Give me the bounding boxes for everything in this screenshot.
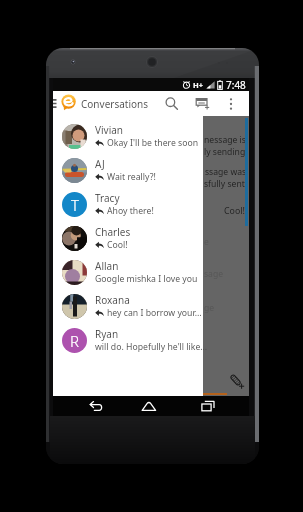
staticText: Ryan bbox=[95, 327, 119, 341]
staticText: Vivian bbox=[95, 123, 124, 137]
button[interactable]: Add attachment bbox=[230, 374, 246, 390]
button[interactable]: Recent apps bbox=[191, 396, 225, 416]
staticText: e bbox=[204, 236, 209, 248]
staticText: H+ bbox=[193, 80, 204, 90]
staticText: Google mishka I love you bbox=[95, 273, 198, 285]
button[interactable]: Allan bbox=[53, 255, 203, 289]
button[interactable]: Search bbox=[160, 91, 184, 116]
staticText: Tracy bbox=[95, 191, 120, 205]
staticText: sfully sent bbox=[204, 178, 245, 190]
staticText: sage bbox=[204, 268, 224, 280]
staticText: Allan bbox=[95, 259, 119, 273]
staticText: 7:48 bbox=[226, 78, 246, 91]
staticText: ssage was bbox=[205, 166, 247, 178]
button[interactable]: Home bbox=[132, 396, 166, 416]
staticText: Okay I'll be there soon bbox=[107, 137, 199, 149]
staticText: Cool! bbox=[107, 239, 128, 251]
staticText: Roxana bbox=[95, 293, 130, 307]
staticText: R bbox=[70, 331, 79, 351]
staticText: AJ bbox=[95, 157, 105, 171]
staticText: will do. Hopefully he'll like… bbox=[95, 341, 208, 353]
staticText: hey can I borrow your… bbox=[107, 307, 202, 319]
staticText: Wait really?! bbox=[107, 171, 156, 183]
staticText: Conversations bbox=[81, 97, 149, 111]
staticText: Ahoy there! bbox=[107, 205, 154, 217]
button[interactable]: More options bbox=[223, 91, 239, 116]
button[interactable]: AJ bbox=[53, 153, 203, 187]
staticText: Charles bbox=[95, 225, 131, 239]
staticText: ge bbox=[204, 302, 215, 314]
button[interactable]: T bbox=[53, 187, 203, 221]
button[interactable]: Back bbox=[79, 396, 113, 416]
button[interactable]: R bbox=[53, 323, 203, 357]
button[interactable]: Vivian bbox=[53, 119, 203, 153]
staticText: T bbox=[71, 195, 79, 215]
staticText: Cool! bbox=[224, 205, 245, 217]
button[interactable]: Charles bbox=[53, 221, 203, 255]
staticText: nessage is bbox=[204, 134, 246, 146]
button[interactable]: Roxana bbox=[53, 289, 203, 323]
staticText: ly sending bbox=[204, 146, 246, 158]
button[interactable]: New conversation bbox=[191, 91, 215, 116]
button[interactable]: Open navigation drawer bbox=[53, 91, 60, 116]
